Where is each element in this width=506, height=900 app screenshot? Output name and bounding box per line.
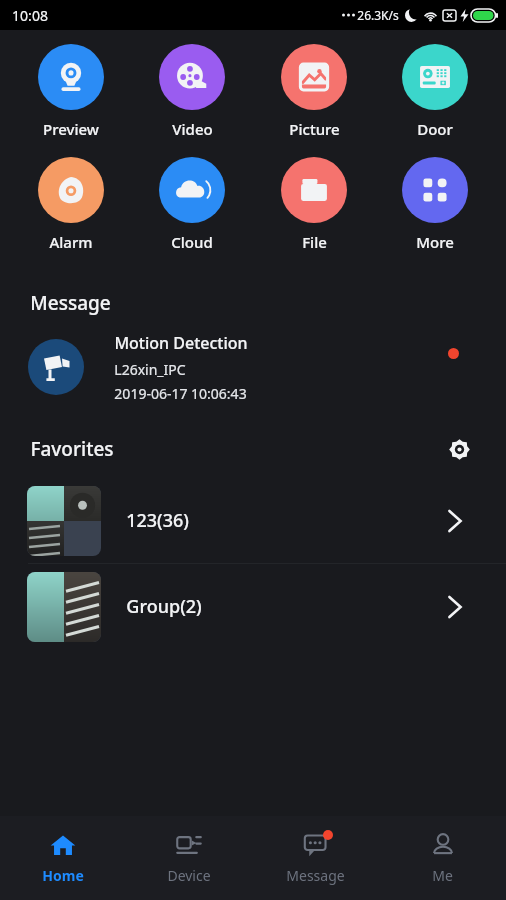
staticText: Message — [286, 866, 345, 885]
button[interactable]: Door — [385, 42, 485, 141]
staticText: Motion Detection — [114, 332, 248, 354]
staticText: Picture — [289, 119, 340, 139]
staticText: L26xin_IPC — [114, 360, 186, 379]
button[interactable]: Group(2) — [0, 564, 506, 649]
staticText: Device — [167, 866, 211, 885]
button[interactable]: Message — [252, 816, 379, 900]
staticText: Cloud — [171, 232, 213, 252]
staticText: Home — [42, 866, 84, 885]
staticText: 10:08 — [12, 6, 48, 25]
button[interactable]: Picture — [264, 42, 364, 141]
button[interactable]: Alarm — [21, 155, 121, 254]
staticText: Me — [432, 866, 453, 885]
staticText: Group(2) — [126, 594, 202, 619]
staticText: File — [302, 232, 327, 252]
staticText: 2019-06-17 10:06:43 — [114, 384, 247, 403]
staticText: More — [416, 232, 454, 252]
button[interactable]: Video — [142, 42, 242, 141]
staticText: Preview — [43, 119, 99, 139]
staticText: Favorites — [30, 436, 114, 462]
button[interactable]: Cloud — [142, 155, 242, 254]
button[interactable]: Me — [379, 816, 506, 900]
staticText: Message — [30, 290, 111, 316]
button[interactable]: File — [264, 155, 364, 254]
button[interactable]: More — [385, 155, 485, 254]
button[interactable]: Preview — [21, 42, 121, 141]
staticText: Door — [417, 119, 453, 139]
button[interactable]: Favorites settings — [442, 432, 476, 466]
staticText: Alarm — [49, 232, 93, 252]
staticText: Video — [172, 119, 213, 139]
staticText: 123(36) — [126, 508, 189, 533]
button[interactable]: 123(36) — [0, 478, 506, 563]
staticText: 26.3K/s — [357, 7, 399, 23]
button[interactable]: Device — [126, 816, 252, 900]
button[interactable]: Motion Detection — [0, 324, 506, 410]
button[interactable]: Home — [0, 816, 126, 900]
